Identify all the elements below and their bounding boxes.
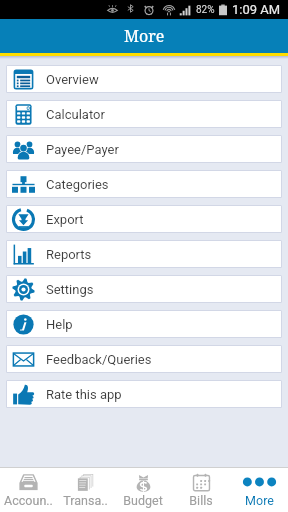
button[interactable]: Help <box>7 311 281 337</box>
staticText: Help <box>46 317 73 332</box>
button[interactable]: Rate this app <box>7 381 281 407</box>
staticText: Export <box>46 212 84 227</box>
staticText: 82% <box>196 4 215 16</box>
staticText: Calculator <box>46 107 105 122</box>
staticText: More <box>245 493 274 508</box>
button[interactable]: Bills <box>172 468 230 512</box>
staticText: Categories <box>46 177 109 192</box>
button[interactable]: Reports <box>7 241 281 267</box>
button[interactable]: Feedback/Queries <box>7 346 281 372</box>
button[interactable]: Export <box>7 206 281 232</box>
staticText: 1:09 AM <box>232 2 281 17</box>
button[interactable]: Overview <box>7 66 281 92</box>
button[interactable]: Accounts <box>0 468 57 512</box>
staticText: Overview <box>46 72 99 87</box>
button[interactable]: Payee/Payer <box>7 136 281 162</box>
staticText: Payee/Payer <box>46 142 119 157</box>
staticText: Reports <box>46 247 92 262</box>
button[interactable]: Budget <box>114 468 172 512</box>
button[interactable]: Calculator <box>7 101 281 127</box>
staticText: Rate this app <box>46 387 122 402</box>
staticText: Budget <box>123 493 163 508</box>
staticText: More <box>124 25 165 47</box>
button[interactable]: Transactions <box>57 468 114 512</box>
button[interactable]: More <box>230 468 288 512</box>
staticText: Bills <box>189 493 213 508</box>
button[interactable]: Settings <box>7 276 281 302</box>
button[interactable]: Categories <box>7 171 281 197</box>
staticText: Feedback/Queries <box>46 352 152 367</box>
staticText: Transa.. <box>63 493 108 508</box>
staticText: Settings <box>46 282 94 297</box>
staticText: Accoun.. <box>4 493 53 508</box>
